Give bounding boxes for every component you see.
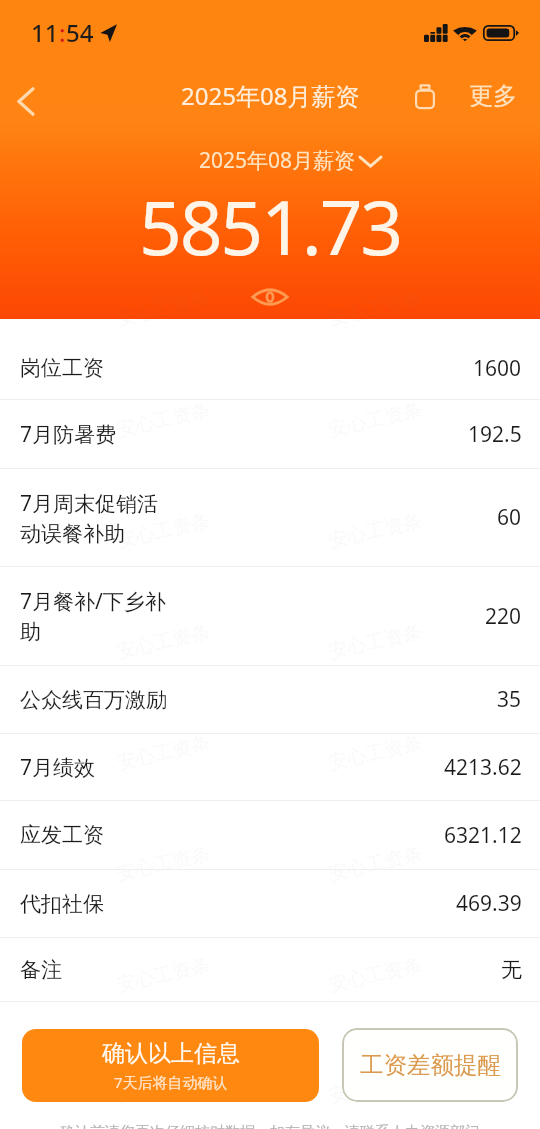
staticText: 60 — [497, 503, 522, 532]
staticText: 2025年08月薪资 — [199, 146, 356, 175]
staticText: 7天后将自动确认 — [114, 1072, 228, 1092]
button[interactable]: Salary jar — [408, 79, 442, 113]
button[interactable]: 7月餐补/下乡补助 — [0, 567, 540, 666]
staticText: 无 — [501, 957, 522, 983]
staticText: 7月防暑费 — [20, 420, 117, 449]
staticText: 192.5 — [468, 420, 522, 449]
button[interactable]: Back — [6, 81, 46, 121]
button[interactable]: 公众线百万激励 — [0, 666, 540, 734]
button[interactable]: 应发工资 — [0, 801, 540, 870]
staticText: 7月绩效 — [20, 753, 96, 782]
button[interactable]: 岗位工资 — [0, 319, 540, 400]
staticText: 7月周末促销活动误餐补助 — [20, 489, 172, 547]
staticText: 公众线百万激励 — [20, 687, 167, 713]
staticText: 54 — [66, 16, 94, 49]
staticText: 安心工资条 — [326, 287, 424, 331]
staticText: 更多 — [469, 81, 517, 111]
button[interactable]: 2025年08月薪资 — [42, 146, 540, 175]
staticText: 备注 — [20, 957, 62, 983]
button[interactable]: 7月绩效 — [0, 734, 540, 801]
staticText: 7月餐补/下乡补助 — [20, 587, 172, 645]
staticText: 岗位工资 — [20, 355, 104, 381]
staticText: 安心工资条 — [114, 509, 212, 553]
staticText: 2025年08月薪资 — [181, 79, 360, 112]
staticText: 安心工资条 — [114, 1064, 212, 1108]
button[interactable]: 代扣社保 — [0, 870, 540, 938]
staticText: 工资差额提醒 — [360, 1050, 501, 1080]
staticText: 11 — [31, 16, 59, 49]
staticText: : — [59, 16, 66, 49]
button[interactable]: 确认以上信息 — [22, 1029, 319, 1102]
staticText: 安心工资条 — [114, 398, 212, 442]
button[interactable]: 备注 — [0, 938, 540, 1002]
staticText: 220 — [485, 602, 522, 631]
staticText: 6321.12 — [444, 821, 522, 850]
staticText: 确认前请您再次仔细核对数据，如有异议，请联系人力资源部门 — [60, 1123, 480, 1129]
staticText: 应发工资 — [20, 822, 104, 848]
staticText: 469.39 — [456, 889, 522, 918]
staticText: 5851.73 — [0, 175, 540, 277]
button[interactable]: 7月防暑费 — [0, 400, 540, 469]
button[interactable]: 7月周末促销活动误餐补助 — [0, 469, 540, 567]
staticText: 1600 — [473, 354, 522, 383]
staticText: 35 — [497, 685, 522, 714]
staticText: 4213.62 — [444, 753, 522, 782]
staticText: 安心工资条 — [114, 287, 212, 331]
staticText: 安心工资条 — [326, 1064, 424, 1108]
button[interactable]: Toggle amount visibility — [248, 280, 292, 314]
button[interactable]: 更多 — [469, 81, 517, 111]
staticText: 确认以上信息 — [102, 1039, 240, 1068]
staticText: 安心工资条 — [538, 287, 540, 331]
staticText: 代扣社保 — [20, 891, 104, 917]
button[interactable]: 工资差额提醒 — [342, 1028, 518, 1102]
